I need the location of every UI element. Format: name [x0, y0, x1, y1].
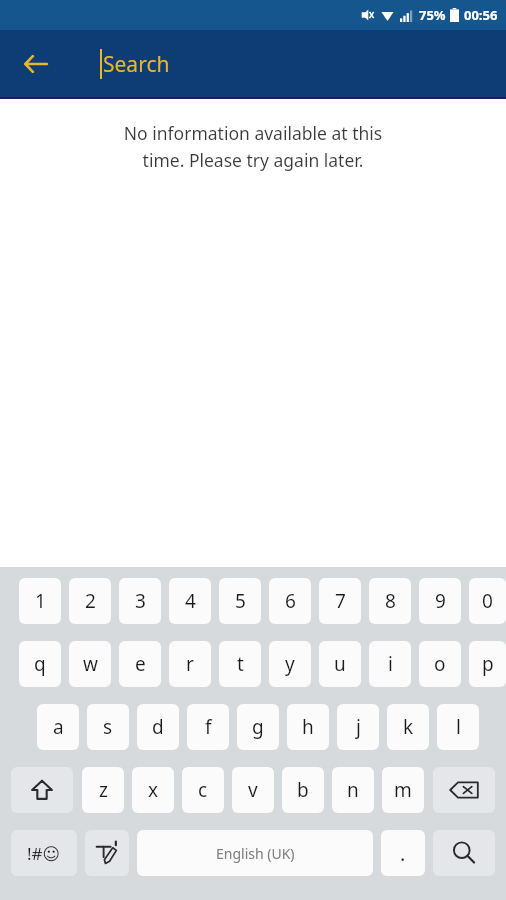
- button[interactable]: l: [437, 704, 479, 750]
- staticText: p: [482, 651, 494, 677]
- button[interactable]: m: [382, 767, 424, 813]
- button[interactable]: x: [132, 767, 174, 813]
- button[interactable]: e: [119, 641, 161, 687]
- button[interactable]: 1: [19, 578, 61, 624]
- button[interactable]: u: [319, 641, 361, 687]
- button[interactable]: English (UK): [137, 830, 373, 876]
- staticText: o: [434, 651, 446, 677]
- staticText: 1: [35, 588, 46, 614]
- staticText: v: [248, 777, 258, 803]
- button[interactable]: h: [287, 704, 329, 750]
- button[interactable]: s: [87, 704, 129, 750]
- button[interactable]: 4: [169, 578, 211, 624]
- staticText: e: [135, 651, 146, 677]
- staticText: b: [297, 777, 309, 803]
- staticText: t: [237, 651, 244, 677]
- button[interactable]: .: [381, 830, 425, 876]
- button[interactable]: c: [182, 767, 224, 813]
- staticText: 4: [185, 588, 196, 614]
- button[interactable]: r: [169, 641, 211, 687]
- staticText: j: [356, 714, 361, 740]
- button[interactable]: k: [387, 704, 429, 750]
- staticText: 3: [135, 588, 146, 614]
- button[interactable]: b: [282, 767, 324, 813]
- button[interactable]: 5: [219, 578, 261, 624]
- staticText: n: [347, 777, 359, 803]
- button[interactable]: v: [232, 767, 274, 813]
- staticText: k: [403, 714, 414, 740]
- staticText: l: [456, 714, 461, 740]
- staticText: a: [53, 714, 64, 740]
- staticText: 8: [385, 588, 396, 614]
- button[interactable]: p: [469, 641, 506, 687]
- staticText: m: [394, 777, 412, 803]
- button[interactable]: Handwriting: [85, 830, 129, 876]
- staticText: r: [186, 651, 194, 677]
- staticText: 5: [235, 588, 246, 614]
- button[interactable]: Back: [10, 38, 62, 90]
- button[interactable]: 0: [469, 578, 506, 624]
- button[interactable]: w: [69, 641, 111, 687]
- staticText: Search: [103, 50, 170, 79]
- staticText: English (UK): [216, 844, 295, 863]
- staticText: 6: [285, 588, 296, 614]
- button[interactable]: n: [332, 767, 374, 813]
- staticText: g: [252, 714, 264, 740]
- button[interactable]: 3: [119, 578, 161, 624]
- button[interactable]: Search: [433, 830, 495, 876]
- button[interactable]: q: [19, 641, 61, 687]
- button[interactable]: Shift: [11, 767, 73, 813]
- button[interactable]: Backspace: [433, 767, 495, 813]
- staticText: y: [285, 651, 295, 677]
- staticText: w: [83, 651, 98, 677]
- staticText: f: [205, 714, 212, 740]
- staticText: !#☺: [27, 842, 61, 865]
- button[interactable]: o: [419, 641, 461, 687]
- button[interactable]: a: [37, 704, 79, 750]
- button[interactable]: 8: [369, 578, 411, 624]
- button[interactable]: i: [369, 641, 411, 687]
- staticText: 0: [482, 588, 493, 614]
- staticText: .: [400, 840, 406, 867]
- staticText: 7: [335, 588, 346, 614]
- staticText: u: [334, 651, 346, 677]
- staticText: 00:56: [464, 6, 498, 24]
- button[interactable]: z: [82, 767, 124, 813]
- staticText: z: [99, 777, 108, 803]
- button[interactable]: y: [269, 641, 311, 687]
- staticText: 75%: [419, 6, 446, 24]
- staticText: 9: [435, 588, 446, 614]
- button[interactable]: j: [337, 704, 379, 750]
- staticText: d: [152, 714, 164, 740]
- button[interactable]: f: [187, 704, 229, 750]
- staticText: s: [103, 714, 113, 740]
- staticText: q: [34, 651, 46, 677]
- staticText: i: [388, 651, 393, 677]
- button[interactable]: d: [137, 704, 179, 750]
- staticText: 2: [85, 588, 96, 614]
- button[interactable]: 6: [269, 578, 311, 624]
- staticText: h: [302, 714, 314, 740]
- staticText: No information available at this time. P…: [0, 121, 506, 172]
- staticText: x: [148, 777, 159, 803]
- staticText: c: [198, 777, 208, 803]
- button[interactable]: Symbols: [11, 830, 77, 876]
- button[interactable]: t: [219, 641, 261, 687]
- button[interactable]: 2: [69, 578, 111, 624]
- button[interactable]: 7: [319, 578, 361, 624]
- button[interactable]: g: [237, 704, 279, 750]
- button[interactable]: 9: [419, 578, 461, 624]
